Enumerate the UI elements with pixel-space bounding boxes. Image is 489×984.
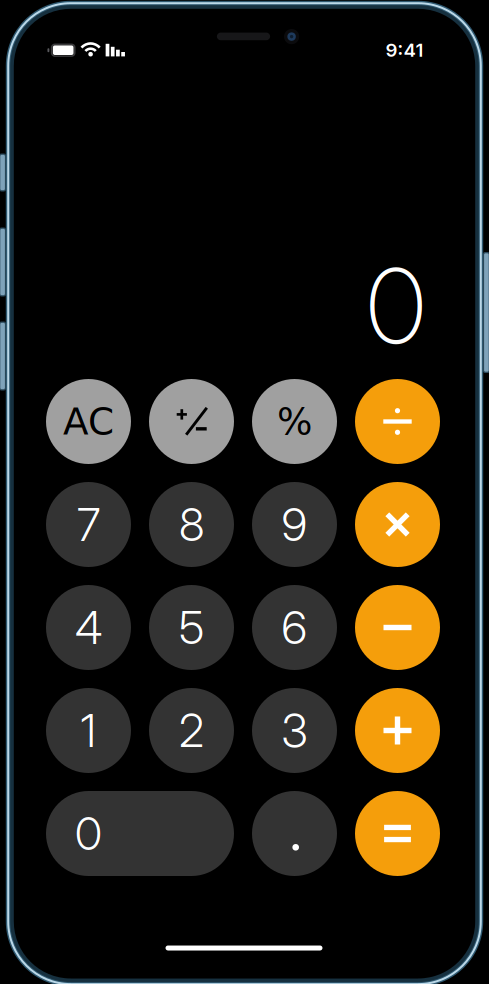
staticText: 5 (179, 600, 204, 655)
staticText: 6 (281, 600, 307, 655)
button[interactable]: 3 (252, 688, 337, 773)
staticText: 8 (179, 497, 204, 552)
staticText: 7 (77, 497, 100, 552)
button[interactable]: 9 (252, 482, 337, 567)
button[interactable]: 6 (252, 585, 337, 670)
button[interactable]: 8 (149, 482, 234, 567)
button[interactable]: 4 (46, 585, 131, 670)
staticText: AC (63, 400, 114, 443)
button[interactable]: 1 (46, 688, 131, 773)
staticText: 3 (281, 703, 307, 758)
staticText: 0 (366, 244, 425, 368)
button[interactable]: % (252, 379, 337, 464)
button[interactable]: Decimal point (252, 791, 337, 876)
button[interactable]: Plus (355, 688, 440, 773)
button[interactable]: Divide (355, 379, 440, 464)
button[interactable]: Minus (355, 585, 440, 670)
button[interactable]: Plus or minus (149, 379, 234, 464)
staticText: 2 (179, 703, 204, 758)
button[interactable]: 5 (149, 585, 234, 670)
staticText: 4 (75, 600, 102, 655)
staticText: 9 (281, 497, 307, 552)
staticText: 9:41 (385, 39, 423, 61)
button[interactable]: AC (46, 379, 131, 464)
staticText: 0 (75, 806, 102, 861)
button[interactable]: Equals (355, 791, 440, 876)
button[interactable]: 2 (149, 688, 234, 773)
button[interactable]: 0 (46, 791, 234, 876)
button[interactable]: Multiply (355, 482, 440, 567)
staticText: % (277, 400, 312, 443)
button[interactable]: 7 (46, 482, 131, 567)
staticText: 1 (80, 703, 96, 758)
